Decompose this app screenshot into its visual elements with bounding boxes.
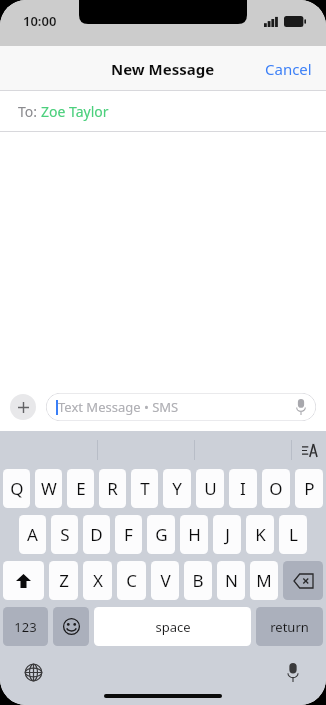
button[interactable]: Text formatting bbox=[292, 431, 326, 469]
staticText: 10:00 bbox=[23, 12, 57, 30]
button[interactable]: Backspace bbox=[283, 561, 323, 600]
button[interactable]: M bbox=[250, 561, 278, 600]
staticText: E bbox=[76, 477, 86, 500]
button[interactable]: G bbox=[147, 515, 175, 554]
button[interactable]: Shift bbox=[3, 561, 44, 600]
button[interactable]: T bbox=[131, 469, 158, 508]
staticText: New Message bbox=[111, 59, 215, 79]
staticText: Z bbox=[59, 569, 69, 592]
staticText: X bbox=[93, 569, 103, 592]
staticText: O bbox=[269, 477, 283, 500]
staticText: L bbox=[289, 523, 298, 546]
button[interactable]: A bbox=[19, 515, 46, 554]
staticText: K bbox=[255, 523, 266, 546]
staticText: I bbox=[240, 477, 246, 500]
staticText: D bbox=[90, 523, 103, 546]
button[interactable]: Cancel bbox=[251, 51, 326, 87]
button[interactable]: Y bbox=[163, 469, 191, 508]
staticText: return bbox=[270, 618, 309, 636]
button[interactable]: P bbox=[295, 469, 323, 508]
button[interactable]: Dictation bbox=[278, 657, 308, 687]
staticText: S bbox=[60, 523, 70, 546]
button[interactable]: L bbox=[279, 515, 307, 554]
button[interactable]: J bbox=[213, 515, 241, 554]
staticText: Q bbox=[10, 477, 24, 500]
button[interactable]: Text Message • SMS bbox=[46, 393, 316, 421]
button[interactable]: E bbox=[67, 469, 94, 508]
staticText: U bbox=[204, 477, 217, 500]
staticText: H bbox=[188, 523, 201, 546]
staticText: To: bbox=[18, 102, 41, 121]
staticText: F bbox=[124, 523, 133, 546]
button[interactable]: S bbox=[51, 515, 78, 554]
button[interactable]: I bbox=[229, 469, 257, 508]
staticText: W bbox=[41, 477, 57, 500]
staticText: Text Message • SMS bbox=[58, 398, 179, 416]
button[interactable]: D bbox=[83, 515, 110, 554]
button[interactable]: Z bbox=[49, 561, 78, 600]
button[interactable]: Add attachment bbox=[10, 394, 36, 420]
staticText: R bbox=[107, 477, 118, 500]
staticText: P bbox=[304, 477, 315, 500]
button[interactable]: 123 bbox=[3, 607, 48, 646]
staticText: Y bbox=[172, 477, 182, 500]
staticText: space bbox=[155, 618, 191, 636]
staticText: C bbox=[126, 569, 137, 592]
button[interactable]: U bbox=[196, 469, 224, 508]
staticText: T bbox=[140, 477, 150, 500]
button[interactable]: K bbox=[246, 515, 274, 554]
staticText: V bbox=[160, 569, 171, 592]
button[interactable]: C bbox=[117, 561, 146, 600]
button[interactable]: V bbox=[151, 561, 179, 600]
staticText: 123 bbox=[14, 618, 37, 636]
staticText: A bbox=[27, 523, 38, 546]
button[interactable]: Q bbox=[3, 469, 30, 508]
staticText: J bbox=[225, 523, 230, 546]
button[interactable]: R bbox=[99, 469, 126, 508]
button[interactable]: W bbox=[35, 469, 62, 508]
button[interactable]: space bbox=[94, 607, 251, 646]
button[interactable]: H bbox=[180, 515, 208, 554]
button[interactable]: Zoe Taylor bbox=[41, 102, 109, 121]
other: Dictate bbox=[295, 399, 307, 415]
button[interactable]: N bbox=[217, 561, 245, 600]
staticText: Cancel bbox=[265, 59, 312, 79]
button[interactable]: F bbox=[115, 515, 142, 554]
button[interactable]: B bbox=[184, 561, 212, 600]
staticText: Zoe Taylor bbox=[41, 102, 109, 121]
button[interactable]: Change keyboard bbox=[18, 657, 48, 687]
button[interactable]: X bbox=[83, 561, 112, 600]
button[interactable]: O bbox=[262, 469, 290, 508]
staticText: M bbox=[256, 569, 272, 592]
button[interactable]: Emoji bbox=[53, 607, 89, 646]
staticText: B bbox=[192, 569, 204, 592]
staticText: N bbox=[225, 569, 238, 592]
button[interactable]: return bbox=[256, 607, 323, 646]
staticText: G bbox=[155, 523, 168, 546]
